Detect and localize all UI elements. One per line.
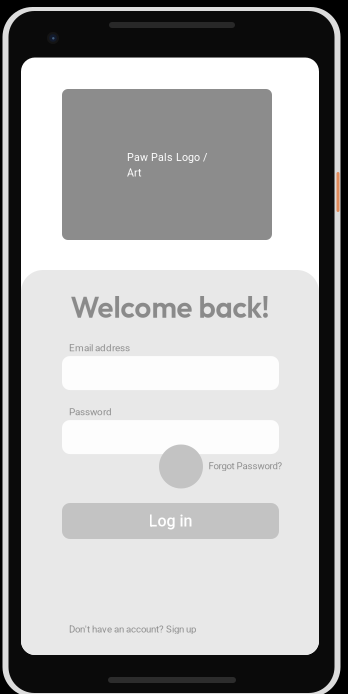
button[interactable]: Forgot Password? xyxy=(208,460,282,472)
staticText: Password xyxy=(69,406,112,418)
staticText: Forgot Password? xyxy=(208,460,282,472)
button[interactable]: Log in xyxy=(62,503,279,539)
staticText: Don't have an account? Sign up xyxy=(69,623,196,635)
button[interactable]: Password xyxy=(62,406,279,454)
button[interactable]: Email address xyxy=(62,342,279,390)
staticText: Email address xyxy=(69,342,130,354)
staticText: Log in xyxy=(148,512,192,530)
button[interactable]: Don't have an account? Sign up xyxy=(69,623,196,635)
staticText: Welcome back! xyxy=(70,288,269,325)
staticText: Paw Pals Logo / Art xyxy=(127,151,207,179)
